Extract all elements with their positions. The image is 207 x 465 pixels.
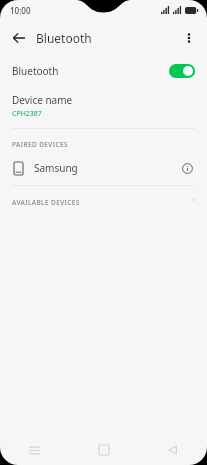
button[interactable]: Recent apps — [0, 435, 69, 465]
button[interactable]: Device name — [0, 86, 207, 123]
staticText: PAIRED DEVICES — [12, 140, 68, 149]
button[interactable]: Bluetooth — [0, 56, 207, 86]
staticText: Samsung — [34, 161, 78, 175]
button[interactable]: Device details — [176, 157, 198, 179]
staticText: Bluetooth — [12, 64, 59, 78]
button[interactable]: Bluetooth on — [169, 64, 195, 78]
button[interactable]: More options — [175, 24, 203, 52]
button[interactable]: Back — [138, 435, 207, 465]
button[interactable]: Home — [69, 435, 138, 465]
staticText: AVAILABLE DEVICES — [12, 198, 80, 207]
staticText: 10:00 — [10, 5, 31, 16]
button[interactable]: Samsung — [0, 154, 207, 182]
staticText: Device name — [12, 93, 73, 107]
staticText: CPH2387 — [12, 109, 42, 119]
button[interactable]: Back — [5, 24, 33, 52]
staticText: Bluetooth — [36, 30, 92, 46]
